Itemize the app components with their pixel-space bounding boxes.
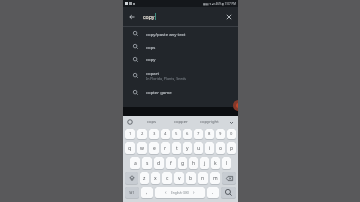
button[interactable]: w	[137, 142, 147, 155]
staticText: copy	[146, 56, 156, 62]
staticText: y	[186, 145, 189, 152]
button[interactable]: g	[178, 157, 187, 170]
staticText: copy/paste any text	[146, 31, 186, 37]
button[interactable]: ‹	[155, 187, 205, 199]
button[interactable]: 8	[205, 129, 214, 140]
button[interactable]: p	[227, 142, 236, 155]
button[interactable]: r	[161, 142, 170, 155]
button[interactable]: j	[200, 157, 209, 170]
staticText: 8	[208, 131, 211, 137]
staticText: o	[219, 145, 223, 152]
button[interactable]: k	[211, 157, 220, 170]
staticText: f	[170, 160, 172, 167]
button[interactable]: 2	[137, 129, 147, 140]
button[interactable]: copy/paste any text	[123, 27, 238, 40]
staticText: 9	[219, 131, 222, 137]
button[interactable]: u	[194, 142, 203, 155]
staticText: 6	[186, 131, 189, 137]
button[interactable]: l	[222, 157, 231, 170]
staticText: .	[212, 189, 214, 196]
button[interactable]: 6	[183, 129, 192, 140]
button[interactable]: d	[154, 157, 164, 170]
button[interactable]: 1	[125, 129, 135, 140]
button[interactable]	[229, 120, 234, 125]
staticText: a	[134, 160, 137, 167]
staticText: g	[181, 160, 185, 167]
staticText: copart	[146, 70, 160, 76]
staticText: In Florida, Plants, Seeds	[146, 76, 187, 81]
staticText: r	[164, 145, 167, 152]
button[interactable]: copyright	[200, 119, 219, 125]
staticText: v	[178, 175, 181, 182]
button[interactable]: q	[125, 142, 135, 155]
button[interactable]: copper	[174, 119, 188, 125]
staticText: copter game	[146, 89, 172, 95]
staticText: ▦▤ ▾ ▴▾ 46% ▮ 7:07 PM	[203, 2, 236, 6]
button[interactable]: e	[149, 142, 159, 155]
button[interactable]: h	[189, 157, 198, 170]
button[interactable]	[226, 14, 232, 20]
staticText: e	[153, 145, 156, 152]
staticText: d	[157, 160, 161, 167]
button[interactable]	[125, 172, 138, 185]
button[interactable]: 4	[161, 129, 170, 140]
button[interactable]: 0	[227, 129, 236, 140]
staticText: x	[154, 175, 157, 182]
staticText: p	[230, 145, 234, 152]
button[interactable]: copart	[123, 65, 238, 85]
button[interactable]: copy	[123, 53, 238, 65]
button[interactable]: 5	[172, 129, 181, 140]
staticText: j	[204, 160, 206, 167]
button[interactable]: 7	[194, 129, 203, 140]
staticText: z	[143, 175, 146, 182]
button[interactable]: ,	[141, 187, 153, 199]
button[interactable]: cops	[147, 119, 157, 125]
button[interactable]: z	[140, 172, 149, 185]
button[interactable]: 3	[149, 129, 159, 140]
staticText: 2	[141, 131, 144, 137]
staticText: 5	[175, 131, 178, 137]
staticText: !#1	[129, 190, 135, 195]
staticText: English (UK)	[171, 191, 189, 195]
button[interactable]	[233, 100, 238, 111]
staticText: 1	[129, 131, 132, 137]
button[interactable]: .	[207, 187, 219, 199]
button[interactable]: copter game	[123, 85, 238, 99]
button[interactable]: y	[183, 142, 192, 155]
button[interactable]: v	[174, 172, 184, 185]
button[interactable]	[129, 14, 135, 20]
button[interactable]: 9	[216, 129, 225, 140]
button[interactable]	[221, 187, 236, 199]
staticText: l	[226, 160, 228, 167]
button[interactable]	[222, 172, 236, 185]
button[interactable]: m	[210, 172, 220, 185]
button[interactable]: f	[166, 157, 176, 170]
staticText: copy	[143, 13, 155, 20]
button[interactable]: c	[162, 172, 172, 185]
staticText: n	[201, 175, 205, 182]
button[interactable]: s	[142, 157, 152, 170]
staticText: ,	[146, 189, 148, 196]
button[interactable]: t	[172, 142, 181, 155]
staticText: w	[140, 145, 144, 152]
staticText: 0	[230, 131, 233, 137]
staticText: t	[176, 145, 178, 152]
button[interactable]: !#1	[125, 187, 139, 199]
staticText: ›	[193, 189, 195, 196]
staticText: c	[166, 175, 169, 182]
staticText: k	[214, 160, 217, 167]
staticText: 7	[197, 131, 200, 137]
button[interactable]: b	[186, 172, 196, 185]
staticText: q	[128, 145, 132, 152]
button[interactable]: n	[198, 172, 208, 185]
button[interactable]	[127, 119, 133, 125]
button[interactable]: x	[151, 172, 160, 185]
staticText: m	[213, 175, 218, 182]
staticText: ‹	[165, 189, 167, 196]
button[interactable]: i	[205, 142, 214, 155]
button[interactable]: a	[130, 157, 140, 170]
button[interactable]: o	[216, 142, 225, 155]
staticText: i	[209, 145, 211, 152]
button[interactable]: cops	[123, 40, 238, 53]
staticText: u	[197, 145, 201, 152]
